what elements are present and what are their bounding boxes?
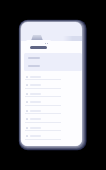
button[interactable] <box>26 75 62 78</box>
button[interactable] <box>26 134 62 137</box>
button[interactable] <box>26 83 62 86</box>
button[interactable] <box>26 109 62 112</box>
button[interactable] <box>26 117 62 120</box>
button[interactable] <box>26 92 62 95</box>
button[interactable] <box>26 126 62 129</box>
button[interactable] <box>26 100 62 103</box>
button[interactable] <box>24 53 82 71</box>
